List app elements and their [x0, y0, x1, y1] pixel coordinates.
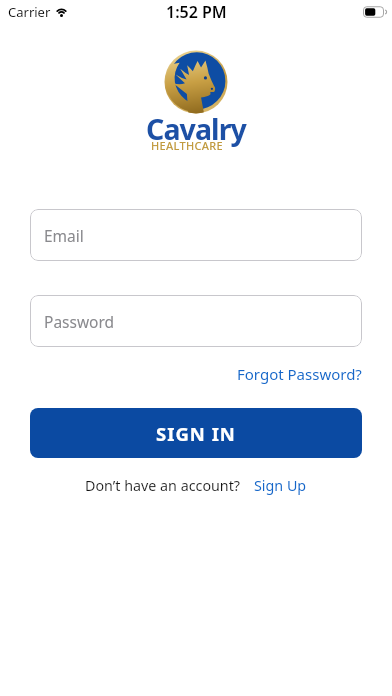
- button[interactable]: Password: [30, 295, 362, 347]
- staticText: Password: [44, 311, 115, 332]
- staticText: Sign Up: [254, 476, 307, 495]
- button[interactable]: Forgot Password?: [237, 364, 362, 384]
- button[interactable]: Sign Up: [254, 476, 307, 495]
- staticText: 1:52 PM: [166, 1, 227, 23]
- staticText: SIGN IN: [156, 421, 236, 446]
- button[interactable]: Email: [30, 209, 362, 261]
- staticText: Don’t have an account?: [85, 476, 241, 495]
- button[interactable]: SIGN IN: [30, 408, 362, 458]
- staticText: Carrier: [8, 3, 51, 21]
- staticText: HEALTHCARE: [151, 138, 223, 153]
- staticText: Email: [44, 225, 84, 246]
- staticText: Forgot Password?: [237, 364, 362, 384]
- staticText: Cavalry: [146, 110, 246, 149]
